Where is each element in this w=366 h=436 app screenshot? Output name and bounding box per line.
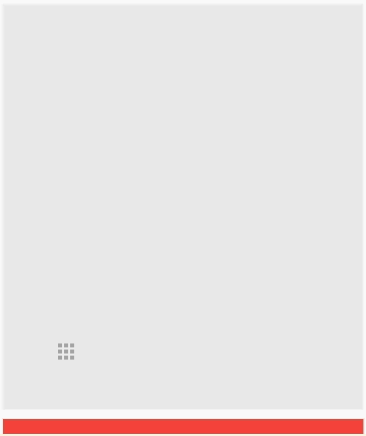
button[interactable]: Apps grid (50, 335, 82, 367)
button[interactable]: Bottom action bar (3, 419, 362, 434)
